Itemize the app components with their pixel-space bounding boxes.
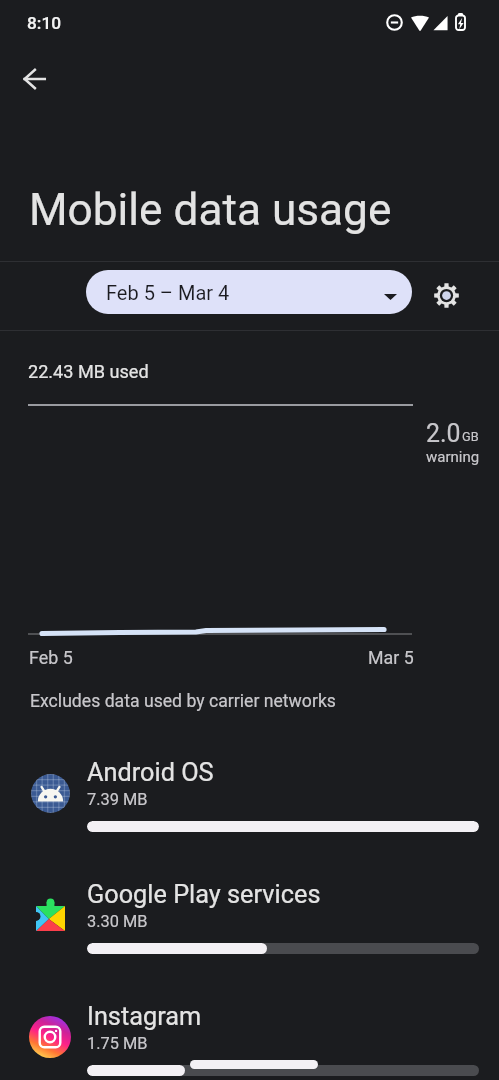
button[interactable]: Android OS xyxy=(0,732,499,844)
staticText: Instagram xyxy=(87,1002,202,1032)
staticText: 2.0 xyxy=(426,419,461,448)
button[interactable]: Instagram xyxy=(0,976,499,1080)
staticText: Feb 5 – Mar 4 xyxy=(106,281,230,304)
button[interactable]: Feb 5 – Mar 4 xyxy=(86,270,412,314)
button[interactable]: Google Play services xyxy=(0,854,499,966)
button[interactable]: Back xyxy=(10,55,58,103)
staticText: 3.30 MB xyxy=(87,912,148,931)
staticText: Mobile data usage xyxy=(29,184,392,236)
button[interactable]: Settings xyxy=(422,271,470,319)
staticText: Mar 5 xyxy=(368,647,414,668)
staticText: Google Play services xyxy=(87,880,321,910)
staticText: 7.39 MB xyxy=(87,790,148,809)
staticText: warning xyxy=(426,448,480,466)
staticText: Feb 5 xyxy=(29,647,73,668)
staticText: 1.75 MB xyxy=(87,1034,148,1053)
staticText: 22.43 MB used xyxy=(28,361,149,382)
staticText: 8:10 xyxy=(27,13,62,33)
staticText: Excludes data used by carrier networks xyxy=(30,691,336,712)
staticText: GB xyxy=(462,429,479,444)
staticText: Android OS xyxy=(87,758,214,788)
